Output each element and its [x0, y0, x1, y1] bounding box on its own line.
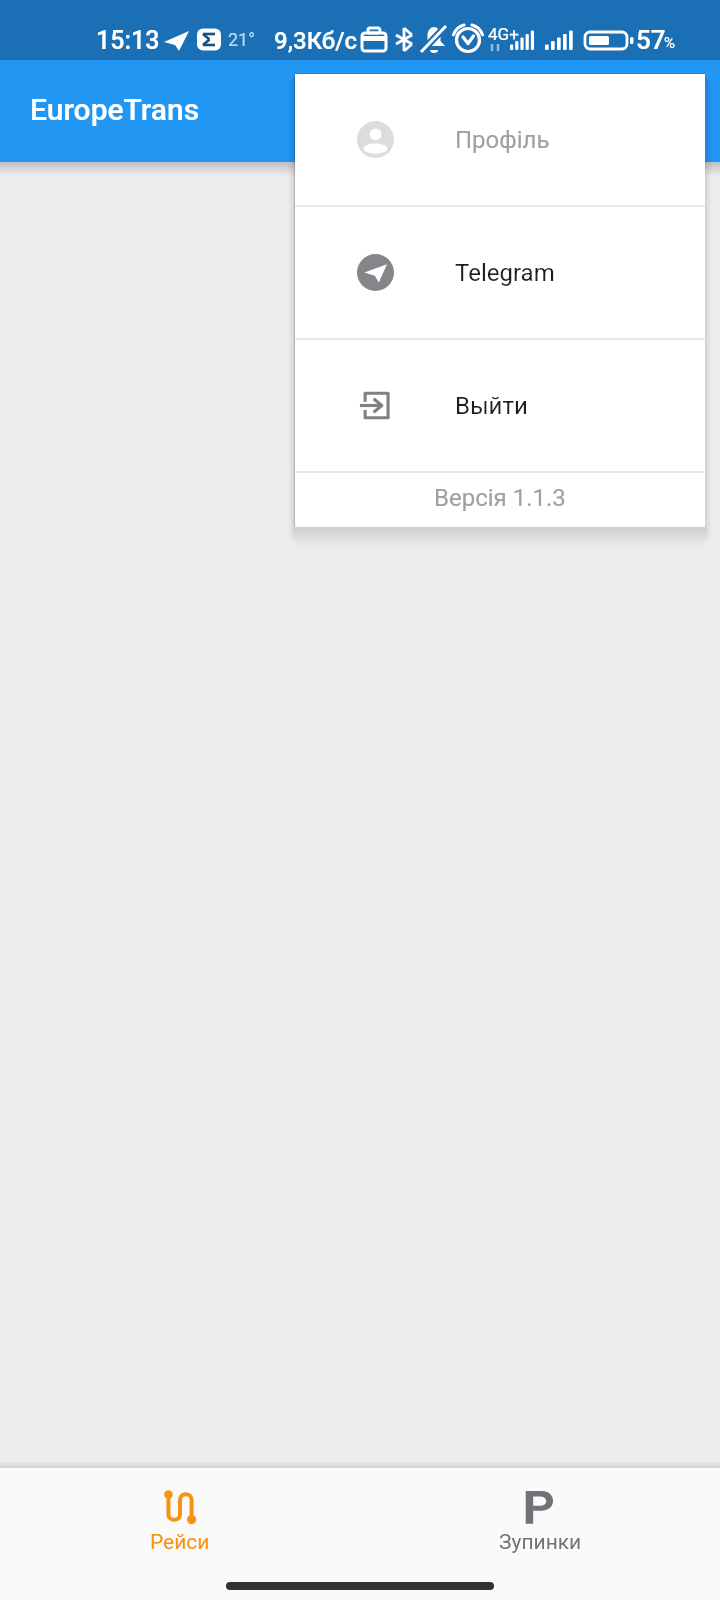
staticText: Зупинки: [499, 1530, 582, 1555]
button[interactable]: Зупинки: [360, 1468, 720, 1568]
staticText: Версія 1.1.3: [434, 484, 566, 512]
staticText: 57: [636, 25, 666, 55]
staticText: 21°: [228, 29, 255, 50]
staticText: Telegram: [455, 259, 555, 287]
staticText: 9,3Кб/с: [274, 27, 358, 55]
button[interactable]: Telegram: [295, 207, 705, 338]
staticText: 15:13: [96, 26, 160, 55]
staticText: %: [664, 34, 675, 52]
button[interactable]: Рейси: [0, 1468, 360, 1568]
staticText: Профіль: [455, 126, 550, 154]
button[interactable]: Log out: [295, 340, 705, 471]
staticText: Выйти: [455, 392, 528, 420]
staticText: Рейси: [150, 1530, 210, 1555]
staticText: 4G+: [488, 24, 519, 44]
staticText: EuropeTrans: [30, 92, 200, 127]
button[interactable]: Profile: [295, 74, 705, 205]
